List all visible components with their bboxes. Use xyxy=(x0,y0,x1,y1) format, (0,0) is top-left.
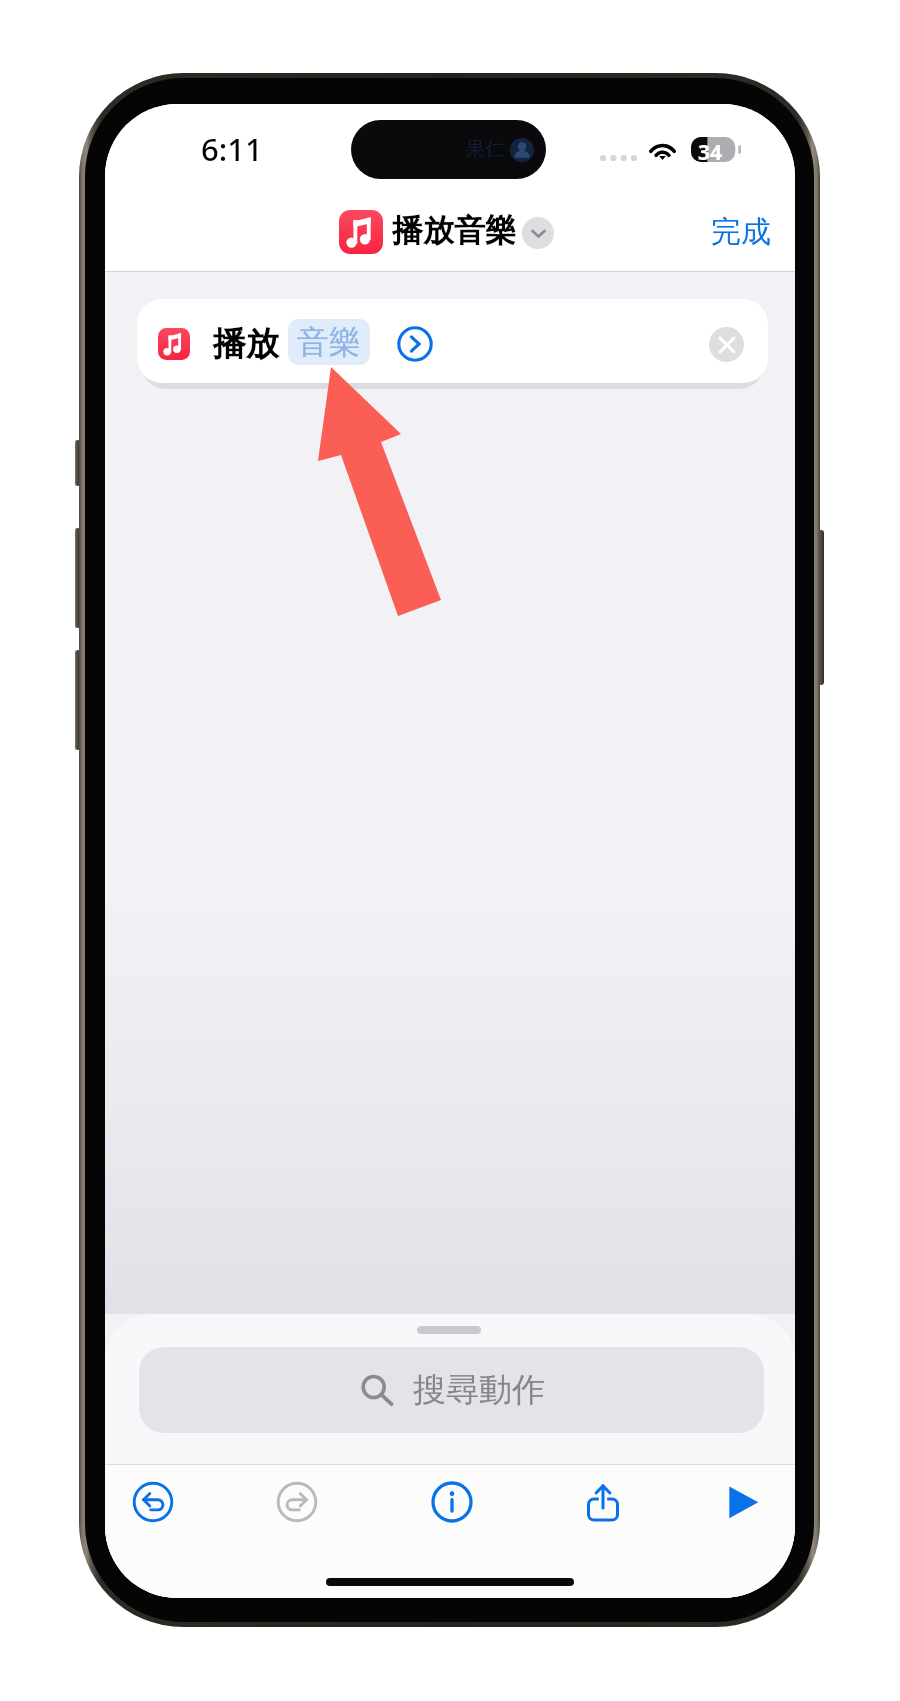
staticText: 音樂 xyxy=(297,322,361,362)
staticText: 播放 xyxy=(213,323,279,365)
button[interactable]: 音樂 xyxy=(288,319,370,365)
button[interactable]: Redo xyxy=(267,1472,327,1532)
button[interactable]: Run shortcut xyxy=(710,1472,770,1532)
button[interactable]: 播放 xyxy=(137,299,768,383)
button[interactable]: Undo xyxy=(123,1472,183,1532)
staticText: 6:11 xyxy=(201,128,263,170)
button[interactable]: Share xyxy=(573,1472,633,1532)
button[interactable]: Remove action xyxy=(709,327,744,362)
staticText: 播放音樂 xyxy=(392,211,516,250)
staticText: 34 xyxy=(698,138,723,167)
button[interactable]: Info xyxy=(422,1472,482,1532)
staticText: 搜尋動作 xyxy=(413,1369,545,1411)
button[interactable]: 完成 xyxy=(707,209,775,255)
button[interactable]: 搜尋動作 xyxy=(139,1347,764,1433)
staticText: 果仁 xyxy=(465,137,505,162)
button[interactable]: More options xyxy=(522,217,554,249)
staticText: 完成 xyxy=(711,213,771,251)
button[interactable]: Show details xyxy=(397,326,433,362)
